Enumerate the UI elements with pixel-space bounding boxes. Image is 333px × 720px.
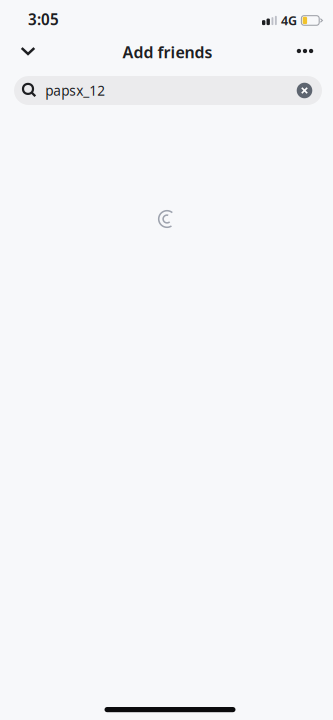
button[interactable]: papsx_12	[14, 76, 322, 105]
staticText: Add friends	[122, 41, 212, 63]
button[interactable]: Clear search text	[287, 76, 322, 105]
button[interactable]: More options	[283, 33, 327, 69]
staticText: 3:05	[28, 9, 59, 30]
staticText: papsx_12	[45, 81, 105, 100]
staticText: 4G	[281, 12, 297, 29]
button[interactable]: Dismiss	[6, 33, 50, 69]
